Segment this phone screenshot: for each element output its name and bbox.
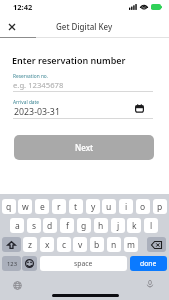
button[interactable]: g [77,218,91,233]
staticText: i [125,201,128,213]
button[interactable]: o [136,199,150,214]
button[interactable]: u [102,199,116,214]
button[interactable]: w [18,199,32,214]
staticText: z [28,239,32,251]
staticText: y [91,201,96,213]
button[interactable]: 123 [2,256,21,271]
button[interactable]: j [111,218,125,233]
staticText: Get Digital Key [56,21,113,32]
staticText: f [66,220,69,232]
staticText: Enter reservation number [12,54,126,66]
staticText: s [32,220,37,232]
button[interactable]: k [127,218,141,233]
staticText: b [94,239,100,251]
staticText: h [98,220,104,232]
staticText: m [127,239,135,251]
staticText: v [78,239,83,251]
staticText: n [111,239,117,251]
button[interactable]: m [124,237,138,252]
button[interactable]: Next [14,135,154,160]
button[interactable]: h [94,218,108,233]
button[interactable]: b [90,237,104,252]
staticText: space [74,259,93,268]
button[interactable]: Switch language [10,278,24,292]
button[interactable]: f [60,218,74,233]
staticText: done [140,259,157,268]
button[interactable]: n [107,237,121,252]
button[interactable]: v [73,237,87,252]
button[interactable] [22,256,37,271]
button[interactable]: y [86,199,100,214]
staticText: l [150,220,153,232]
staticText: 12:42 [13,2,33,12]
staticText: e.g. 12345678 [13,80,64,90]
button[interactable]: a [10,218,24,233]
staticText: t [74,201,78,213]
button[interactable]: i [119,199,133,214]
staticText: p [157,201,163,213]
staticText: Next [75,142,94,153]
staticText: j [117,220,120,232]
staticText: o [140,201,146,213]
button[interactable]: s [27,218,41,233]
staticText: d [47,220,53,232]
button[interactable] [147,237,166,252]
staticText: x [45,239,50,251]
button[interactable]: Voice input [143,277,157,291]
staticText: c [62,239,67,251]
button[interactable]: x [40,237,54,252]
button[interactable]: d [43,218,57,233]
staticText: 123 [7,260,17,268]
button[interactable]: l [144,218,158,233]
button[interactable]: r [52,199,66,214]
button[interactable]: Pick date [132,101,146,115]
staticText: w [22,201,29,213]
staticText: q [6,201,12,213]
staticText: g [81,220,87,232]
staticText: k [132,220,137,232]
button[interactable]: space [40,256,127,271]
staticText: e [40,201,45,213]
button[interactable]: z [23,237,37,252]
button[interactable]: t [69,199,83,214]
staticText: Arrival date [13,99,39,106]
staticText: Reservation no. [13,73,49,80]
button[interactable]: c [57,237,71,252]
button[interactable]: done [130,256,167,271]
staticText: a [15,220,20,232]
button[interactable]: q [2,199,16,214]
button[interactable]: Close [4,19,20,35]
staticText: u [106,201,112,213]
button[interactable]: e [35,199,49,214]
staticText: 2023-03-31 [14,106,60,118]
button[interactable]: p [153,199,167,214]
button[interactable] [2,237,21,252]
staticText: r [57,201,61,213]
